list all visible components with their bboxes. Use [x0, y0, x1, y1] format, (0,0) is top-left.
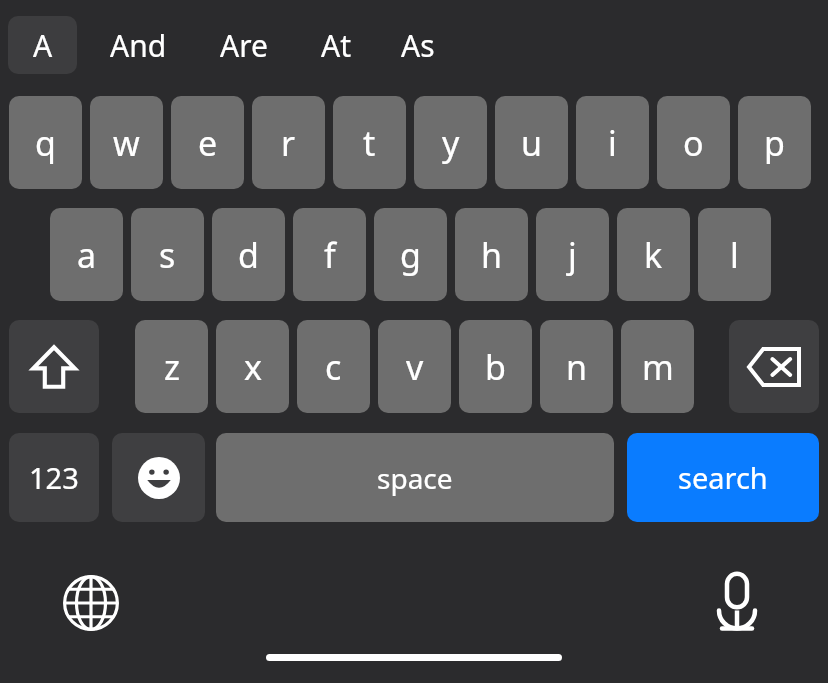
- staticText: And: [110, 25, 167, 66]
- button[interactable]: y: [414, 96, 487, 189]
- staticText: x: [244, 344, 262, 390]
- button[interactable]: x: [216, 320, 289, 413]
- staticText: y: [442, 120, 460, 166]
- button[interactable]: Voice input: [701, 567, 773, 639]
- button[interactable]: m: [621, 320, 694, 413]
- staticText: n: [566, 344, 588, 390]
- staticText: m: [642, 344, 674, 390]
- staticText: l: [730, 232, 739, 278]
- button[interactable]: i: [576, 96, 649, 189]
- button[interactable]: search: [627, 433, 819, 522]
- staticText: t: [363, 120, 376, 166]
- staticText: d: [238, 232, 259, 278]
- staticText: e: [198, 120, 218, 166]
- button[interactable]: g: [374, 208, 447, 301]
- staticText: p: [764, 120, 785, 166]
- staticText: o: [683, 120, 704, 166]
- staticText: v: [406, 344, 424, 390]
- button[interactable]: And: [100, 16, 176, 74]
- button[interactable]: d: [212, 208, 285, 301]
- button[interactable]: c: [297, 320, 370, 413]
- button[interactable]: 123: [9, 433, 99, 522]
- button[interactable]: r: [252, 96, 325, 189]
- button[interactable]: h: [455, 208, 528, 301]
- staticText: At: [321, 25, 351, 66]
- button[interactable]: Emoji: [112, 433, 205, 522]
- staticText: u: [521, 120, 543, 166]
- button[interactable]: k: [617, 208, 690, 301]
- staticText: 123: [29, 458, 79, 497]
- staticText: g: [400, 232, 421, 278]
- button[interactable]: a: [50, 208, 123, 301]
- button[interactable]: As: [393, 16, 443, 74]
- button[interactable]: p: [738, 96, 811, 189]
- staticText: w: [113, 120, 140, 166]
- button[interactable]: l: [698, 208, 771, 301]
- staticText: z: [164, 344, 180, 390]
- button[interactable]: At: [314, 16, 358, 74]
- button[interactable]: v: [378, 320, 451, 413]
- staticText: As: [401, 25, 435, 66]
- button[interactable]: Shift: [9, 320, 99, 413]
- staticText: b: [485, 344, 506, 390]
- staticText: k: [644, 232, 663, 278]
- staticText: f: [324, 232, 336, 278]
- button[interactable]: Change keyboard language: [55, 567, 127, 639]
- staticText: A: [33, 25, 53, 66]
- button[interactable]: w: [90, 96, 163, 189]
- button[interactable]: space: [216, 433, 614, 522]
- button[interactable]: q: [9, 96, 82, 189]
- button[interactable]: s: [131, 208, 204, 301]
- button[interactable]: t: [333, 96, 406, 189]
- staticText: s: [159, 232, 176, 278]
- staticText: c: [325, 344, 342, 390]
- staticText: i: [608, 120, 617, 166]
- staticText: a: [77, 232, 97, 278]
- button[interactable]: z: [135, 320, 208, 413]
- button[interactable]: f: [293, 208, 366, 301]
- button[interactable]: A: [8, 16, 77, 74]
- button[interactable]: e: [171, 96, 244, 189]
- button[interactable]: j: [536, 208, 609, 301]
- staticText: space: [377, 459, 453, 497]
- staticText: h: [481, 232, 503, 278]
- button[interactable]: n: [540, 320, 613, 413]
- button[interactable]: u: [495, 96, 568, 189]
- button[interactable]: Backspace: [729, 320, 819, 413]
- staticText: search: [678, 458, 768, 497]
- button[interactable]: o: [657, 96, 730, 189]
- button[interactable]: b: [459, 320, 532, 413]
- staticText: q: [35, 120, 56, 166]
- button[interactable]: Are: [211, 16, 277, 74]
- staticText: r: [281, 120, 296, 166]
- staticText: j: [568, 232, 577, 278]
- staticText: Are: [220, 25, 268, 66]
